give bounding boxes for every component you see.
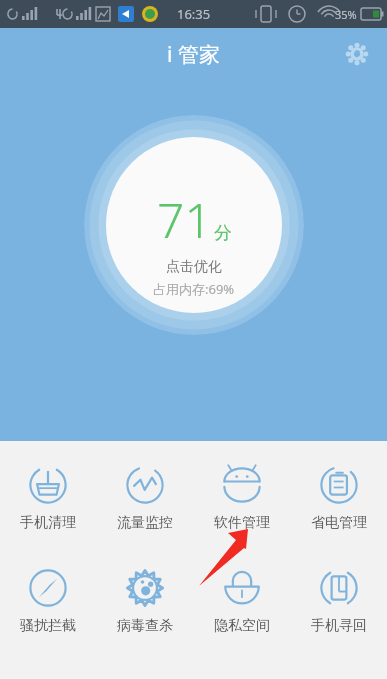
staticText: 分 <box>214 222 232 245</box>
staticText: 16:35 <box>177 5 211 23</box>
button[interactable]: 骚扰拦截 <box>0 568 96 635</box>
staticText: 手机寻回 <box>311 617 367 635</box>
staticText: 占用内存:69% <box>153 280 235 298</box>
button[interactable]: 手机寻回 <box>290 568 387 635</box>
button[interactable]: 病毒查杀 <box>96 568 193 635</box>
button[interactable]: 省电管理 <box>290 465 387 532</box>
button[interactable]: Settings <box>335 32 379 76</box>
button[interactable]: 软件管理 <box>193 465 290 532</box>
staticText: 点击优化 <box>166 258 222 276</box>
staticText: 隐私空间 <box>214 617 270 635</box>
button[interactable]: 隐私空间 <box>193 568 290 635</box>
button[interactable]: 71 <box>84 115 304 335</box>
staticText: 71 <box>157 187 212 252</box>
button[interactable]: 流量监控 <box>96 465 193 532</box>
staticText: 省电管理 <box>311 514 367 532</box>
staticText: 病毒查杀 <box>117 617 173 635</box>
staticText: 手机清理 <box>20 514 76 532</box>
button[interactable]: 手机清理 <box>0 465 96 532</box>
staticText: 骚扰拦截 <box>20 617 76 635</box>
staticText: i 管家 <box>167 40 220 69</box>
staticText: 流量监控 <box>117 514 173 532</box>
staticText: 软件管理 <box>214 514 270 532</box>
staticText: 35% <box>335 7 357 22</box>
